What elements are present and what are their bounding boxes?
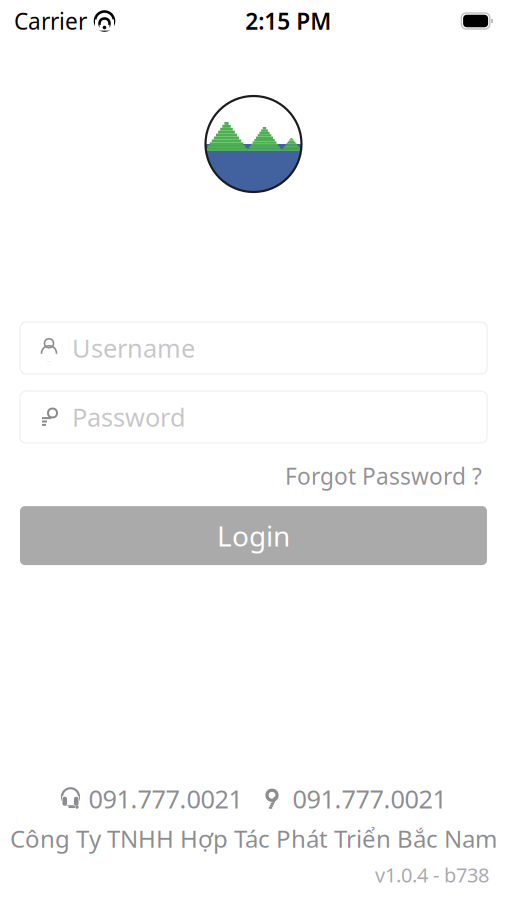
staticText: Công Ty TNHH Hợp Tác Phát Triển Bắc Nam xyxy=(10,823,497,854)
staticText: Forgot Password ? xyxy=(285,461,482,491)
staticText: 2:15 PM xyxy=(245,6,331,36)
button[interactable]: Password xyxy=(20,391,487,443)
staticText: Password xyxy=(72,400,186,434)
staticText: 091.777.0021 xyxy=(292,782,446,815)
button[interactable]: Login xyxy=(20,506,487,565)
button[interactable]: 091.777.0021 xyxy=(264,782,446,815)
button[interactable]: 091.777.0021 xyxy=(60,782,242,815)
staticText: Username xyxy=(72,331,195,365)
staticText: Carrier xyxy=(14,6,87,36)
staticText: v1.0.4 - b738 xyxy=(375,861,489,888)
button[interactable]: Username xyxy=(20,322,487,374)
button[interactable]: Forgot Password ? xyxy=(279,457,488,495)
staticText: Login xyxy=(217,517,290,554)
staticText: 091.777.0021 xyxy=(88,782,242,815)
